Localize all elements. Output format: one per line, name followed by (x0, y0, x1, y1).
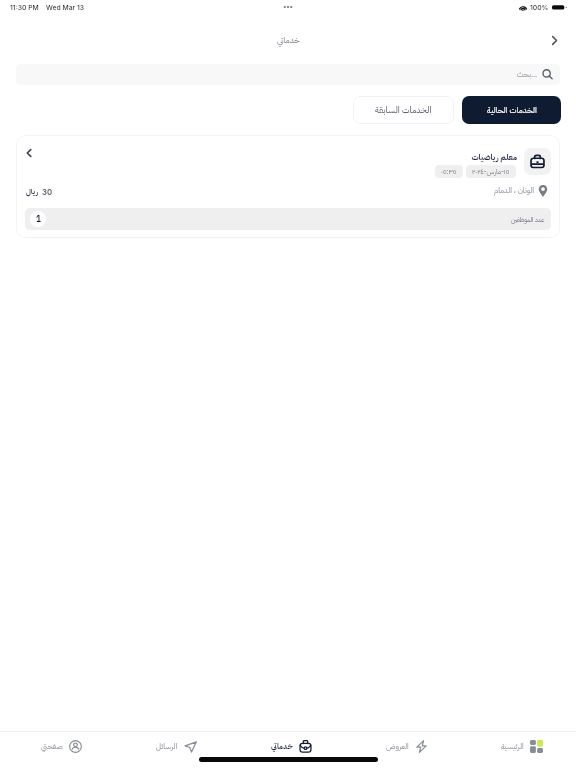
button[interactable]: خدماتي (234, 732, 349, 760)
staticText: الرسائل (156, 741, 178, 752)
button[interactable]: Open details (20, 144, 38, 162)
staticText: خدماتي (271, 741, 293, 752)
staticText: بحث... (517, 69, 538, 80)
staticText: ١٥-مارس-٢٠٢٤ (472, 167, 510, 177)
staticText: عدد الموظفين (511, 215, 545, 224)
button[interactable]: الخدمات السابقة (353, 96, 454, 124)
button[interactable]: الرسائل (119, 732, 234, 760)
staticText: الخدمات الحالية (487, 104, 537, 116)
button[interactable]: Open details (16, 135, 560, 238)
button[interactable]: صفحتي (3, 732, 119, 760)
staticText: خدماتي (277, 34, 300, 47)
staticText: صفحتي (41, 741, 63, 752)
staticText: الونان ، الدمام (494, 185, 534, 197)
staticText: الخدمات السابقة (375, 103, 432, 117)
staticText: Wed Mar 13 (46, 3, 85, 11)
staticText: العروض (386, 741, 409, 752)
staticText: 1 (36, 213, 41, 225)
button[interactable]: العروض (349, 732, 464, 760)
button[interactable]: 1 (25, 208, 551, 230)
button[interactable]: الرئيسية (464, 732, 576, 760)
button[interactable]: Forward (543, 29, 565, 51)
button[interactable]: بحث... (16, 64, 560, 85)
staticText: ريال (26, 186, 39, 197)
staticText: 100% (530, 3, 549, 11)
button[interactable]: الخدمات الحالية (462, 96, 561, 124)
staticText: معلم رياضيات (16, 151, 517, 163)
staticText: 30 (42, 187, 53, 196)
staticText: ٠٥:٣٥ (441, 167, 457, 177)
staticText: الرئيسية (501, 741, 524, 752)
staticText: 11:30 PM (10, 3, 39, 11)
